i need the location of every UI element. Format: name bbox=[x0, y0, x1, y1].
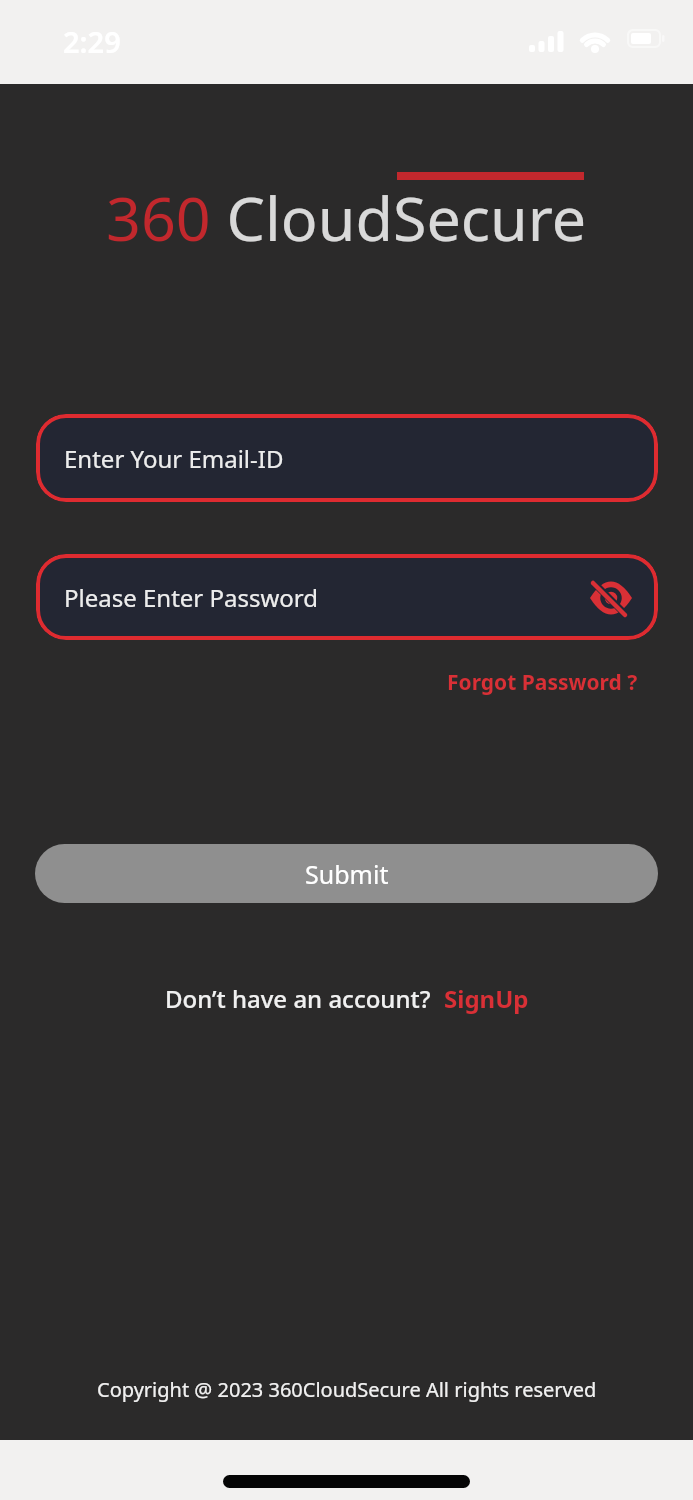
button[interactable]: Please Enter Password bbox=[36, 554, 658, 640]
button[interactable]: Forgot Password ? bbox=[447, 668, 638, 697]
staticText: 360 CloudSecure bbox=[106, 176, 587, 259]
staticText: Enter Your Email-ID bbox=[64, 442, 284, 475]
staticText: Copyright @ 2023 360CloudSecure All righ… bbox=[97, 1376, 597, 1403]
button[interactable]: Enter Your Email-ID bbox=[36, 414, 658, 502]
staticText: Don’t have an account? bbox=[165, 982, 431, 1015]
button[interactable] bbox=[589, 577, 633, 617]
staticText: Forgot Password ? bbox=[447, 668, 638, 697]
button[interactable]: Submit bbox=[35, 844, 658, 903]
staticText: SignUp bbox=[444, 982, 529, 1015]
button[interactable]: SignUp bbox=[444, 982, 529, 1015]
staticText: Submit bbox=[305, 857, 389, 891]
staticText: Please Enter Password bbox=[64, 581, 319, 614]
staticText: 2:29 bbox=[63, 22, 121, 61]
